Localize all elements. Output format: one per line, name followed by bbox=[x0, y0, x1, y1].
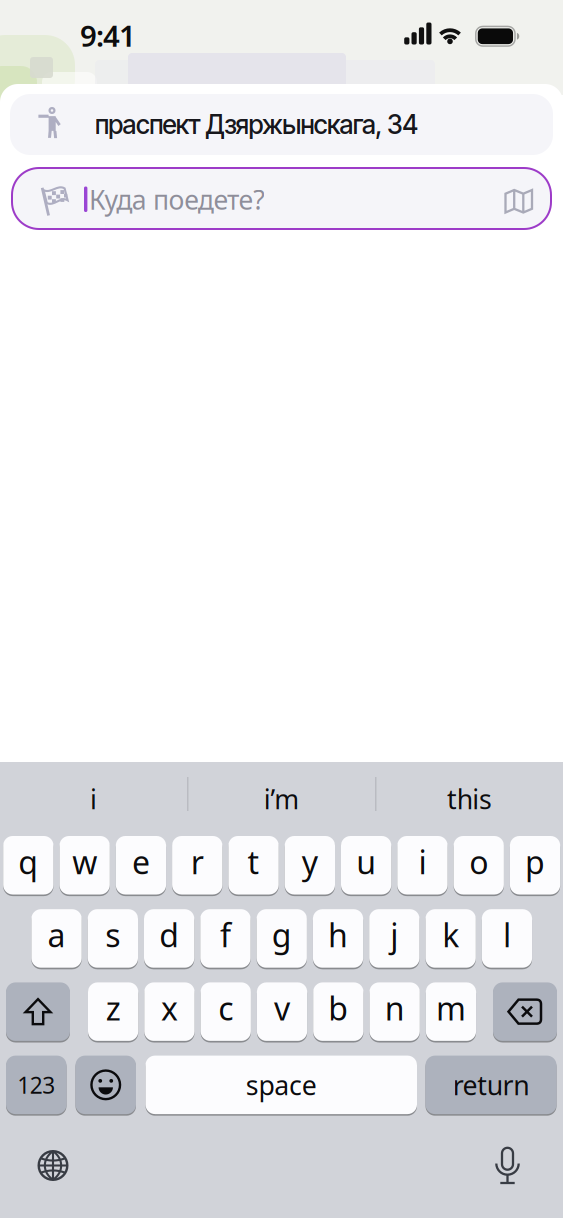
staticText: g bbox=[272, 914, 292, 956]
staticText: 123 bbox=[17, 1070, 55, 1100]
button[interactable]: r bbox=[172, 836, 222, 894]
staticText: r bbox=[191, 840, 204, 883]
button[interactable]: t bbox=[228, 836, 279, 894]
staticText: o bbox=[469, 840, 488, 883]
button[interactable]: Dictation bbox=[489, 1146, 525, 1187]
button[interactable]: e bbox=[116, 836, 166, 894]
staticText: d bbox=[159, 914, 179, 956]
button[interactable]: f bbox=[200, 909, 251, 968]
staticText: t bbox=[247, 840, 259, 883]
staticText: n bbox=[385, 987, 405, 1029]
button[interactable]: y bbox=[285, 836, 335, 894]
button[interactable]: m bbox=[426, 982, 476, 1041]
button[interactable]: d bbox=[144, 909, 194, 968]
staticText: e bbox=[132, 840, 150, 883]
staticText: m bbox=[436, 987, 466, 1029]
staticText: q bbox=[18, 840, 38, 883]
button[interactable]: p bbox=[510, 836, 560, 894]
staticText: i bbox=[90, 781, 97, 817]
staticText: space bbox=[246, 1067, 317, 1102]
button[interactable]: k bbox=[425, 909, 476, 968]
staticText: v bbox=[274, 987, 290, 1029]
staticText: i bbox=[418, 840, 426, 883]
button[interactable]: i bbox=[397, 836, 448, 894]
button[interactable]: g bbox=[257, 909, 307, 968]
button[interactable]: Shift bbox=[6, 982, 70, 1041]
button[interactable]: o bbox=[454, 836, 504, 894]
button[interactable]: w bbox=[59, 836, 110, 894]
staticText: y bbox=[302, 840, 318, 883]
button[interactable]: s bbox=[88, 909, 138, 968]
button[interactable]: l bbox=[482, 909, 532, 968]
button[interactable]: this bbox=[376, 775, 563, 823]
staticText: s bbox=[105, 914, 120, 956]
staticText: u bbox=[356, 840, 376, 883]
button[interactable]: Emoji bbox=[75, 1056, 136, 1114]
staticText: w bbox=[72, 840, 97, 883]
button[interactable]: c bbox=[201, 982, 251, 1041]
button[interactable]: h bbox=[313, 909, 363, 968]
button[interactable]: n bbox=[369, 982, 420, 1041]
button[interactable]: j bbox=[369, 909, 419, 968]
staticText: i’m bbox=[264, 781, 299, 817]
staticText: f bbox=[220, 914, 231, 956]
staticText: l bbox=[503, 914, 511, 956]
staticText: z bbox=[106, 987, 121, 1029]
staticText: 9:41 bbox=[80, 16, 136, 55]
button[interactable]: 123 bbox=[6, 1056, 66, 1114]
button[interactable]: Next keyboard bbox=[36, 1149, 69, 1182]
staticText: this bbox=[447, 781, 492, 817]
staticText: x bbox=[161, 987, 178, 1029]
button[interactable]: z bbox=[88, 982, 138, 1041]
button[interactable]: i’m bbox=[188, 775, 375, 823]
button[interactable]: u bbox=[341, 836, 391, 894]
button[interactable]: space bbox=[145, 1056, 417, 1114]
button[interactable]: q bbox=[3, 836, 53, 894]
button[interactable]: return bbox=[425, 1056, 556, 1114]
staticText: h bbox=[328, 914, 348, 956]
staticText: Куда поедете? bbox=[89, 182, 265, 217]
button[interactable]: x bbox=[144, 982, 195, 1041]
button[interactable]: праспект Дзяржынскага, 34 bbox=[10, 94, 553, 155]
staticText: b bbox=[328, 987, 348, 1029]
staticText: j bbox=[390, 914, 398, 956]
button[interactable]: Выбрать на карте bbox=[504, 188, 534, 214]
staticText: праспект Дзяржынскага, 34 bbox=[95, 109, 418, 140]
button[interactable]: i bbox=[0, 775, 187, 823]
staticText: p bbox=[525, 840, 545, 883]
button[interactable]: b bbox=[313, 982, 363, 1041]
staticText: return bbox=[453, 1067, 529, 1102]
button[interactable]: a bbox=[31, 909, 82, 968]
button[interactable]: v bbox=[257, 982, 307, 1041]
button[interactable]: Delete bbox=[493, 982, 557, 1041]
staticText: c bbox=[218, 987, 233, 1029]
staticText: a bbox=[47, 914, 65, 956]
staticText: k bbox=[442, 914, 459, 956]
